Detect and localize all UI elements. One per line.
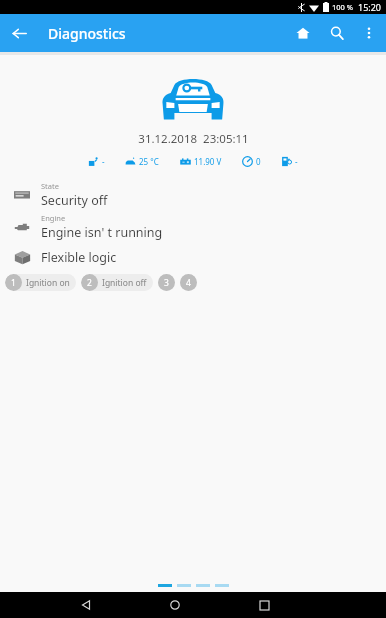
staticText: Security off [41,192,108,209]
button[interactable]: 3 [158,274,175,291]
staticText: - [295,156,298,167]
staticText: 1 [11,277,16,289]
button[interactable]: 2 [81,274,153,291]
staticText: State [41,181,59,191]
staticText: 31.12.2018 23:05:11 [138,131,249,147]
button[interactable]: Home [154,592,196,618]
staticText: Ignition on [26,277,70,289]
staticText: 15:20 [358,1,382,13]
staticText: 11.90 V [194,156,222,167]
button[interactable]: Home [286,14,320,52]
staticText: Flexible logic [41,249,117,266]
staticText: 0 [256,156,261,167]
staticText: 4 [186,277,191,289]
button[interactable]: More options [354,14,384,52]
button[interactable]: Flexible logic [0,243,386,271]
staticText: 25 °C [139,156,159,167]
staticText: Engine isn' t running [41,224,163,241]
button[interactable]: 4 [180,274,197,291]
staticText: Engine [41,213,66,223]
button[interactable]: Search [320,14,354,52]
button[interactable]: Back [0,14,38,52]
staticText: Ignition off [102,277,147,289]
staticText: - [102,156,105,167]
button[interactable]: State [0,179,386,211]
button[interactable]: 1 [5,274,76,291]
button[interactable]: Recent apps [243,592,285,618]
button[interactable]: Engine [0,211,386,243]
staticText: 100 % [332,2,354,12]
staticText: Diagnostics [48,24,126,43]
staticText: 3 [164,277,169,289]
button[interactable]: Back [65,592,107,618]
staticText: 2 [87,277,92,289]
